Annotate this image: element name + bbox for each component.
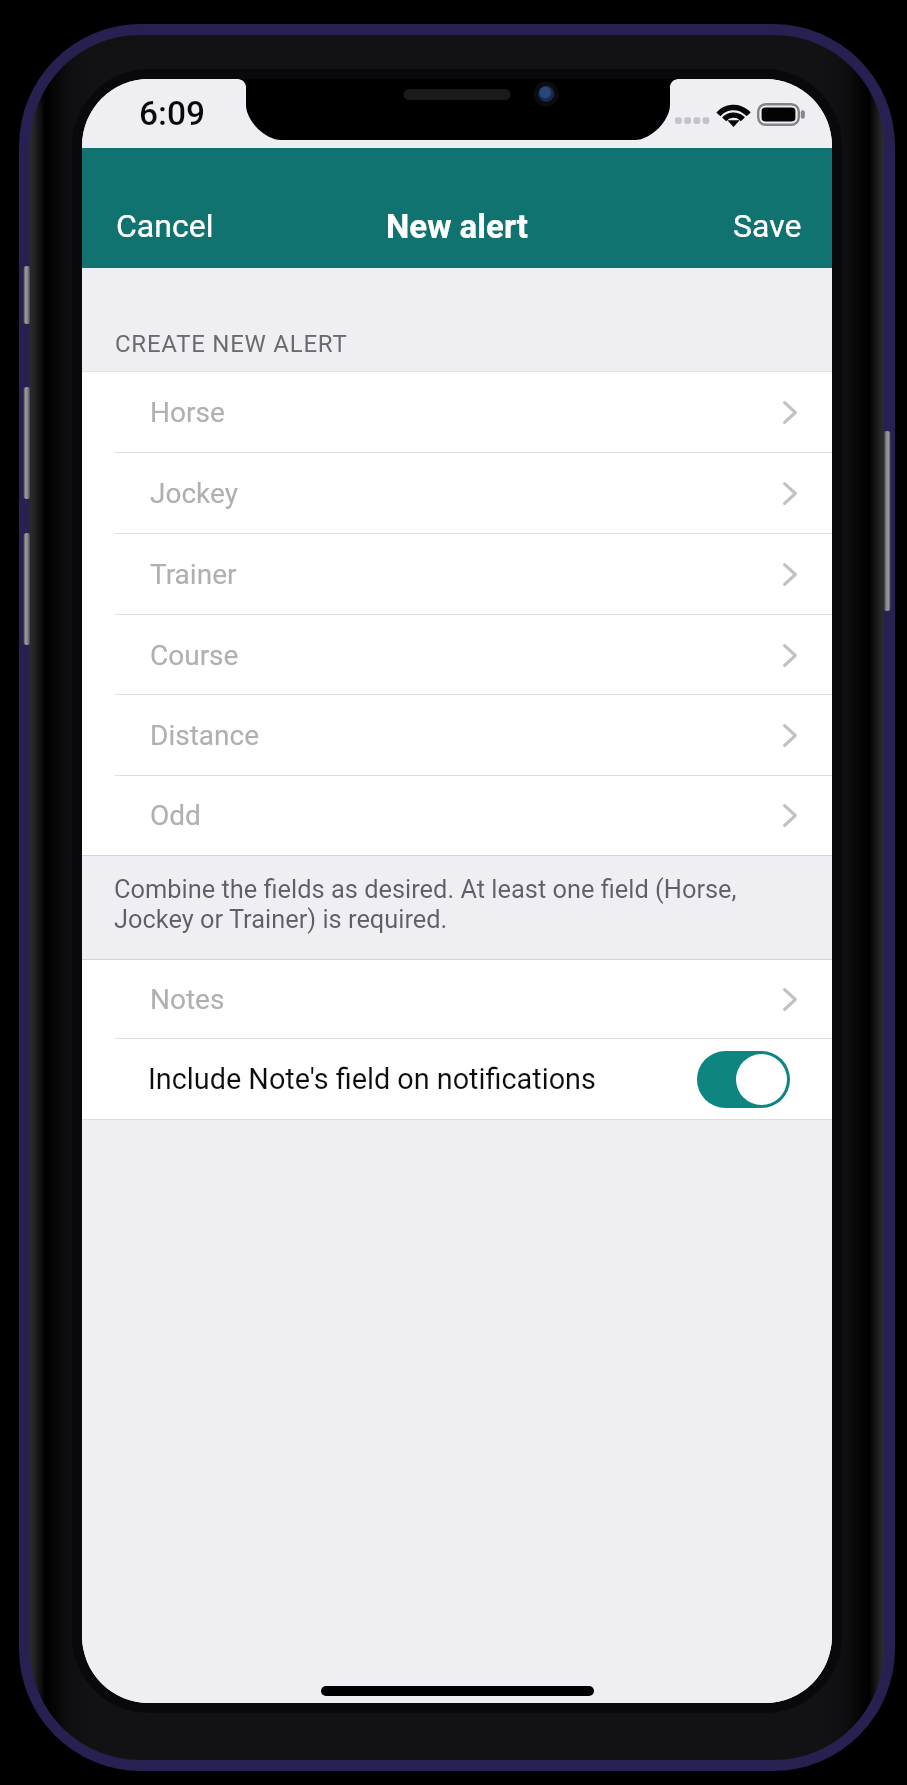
button[interactable]: Cancel	[82, 193, 240, 259]
staticText: 6:09	[139, 94, 206, 133]
staticText: Include Note's field on notifications	[148, 1062, 596, 1096]
staticText: Jockey	[150, 477, 238, 510]
staticText: New alert	[386, 207, 528, 246]
staticText: Cancel	[116, 207, 214, 245]
staticText: CREATE NEW ALERT	[115, 330, 348, 358]
button[interactable]: Course	[82, 615, 832, 695]
button[interactable]: Jockey	[82, 453, 832, 534]
button[interactable]: Odd	[82, 776, 832, 855]
staticText: Save	[733, 207, 802, 245]
staticText: Trainer	[150, 558, 237, 591]
button[interactable]: Trainer	[82, 534, 832, 615]
staticText: Course	[150, 639, 239, 672]
button[interactable]: Include note field on notifications togg…	[697, 1051, 790, 1108]
button[interactable]: Include Note's field on notifications	[82, 1039, 832, 1119]
button[interactable]: Horse	[82, 372, 832, 453]
button[interactable]: Distance	[82, 695, 832, 776]
button[interactable]: Save	[707, 193, 832, 259]
staticText: Horse	[150, 396, 225, 429]
staticText: Odd	[150, 799, 201, 832]
staticText: Distance	[150, 719, 259, 752]
button[interactable]: Notes	[82, 960, 832, 1039]
staticText: Notes	[150, 983, 225, 1016]
staticText: Combine the fields as desired. At least …	[114, 874, 754, 934]
